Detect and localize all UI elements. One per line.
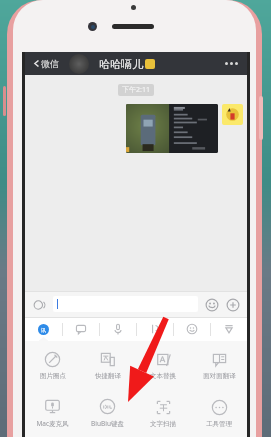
button[interactable]: Input method: [25, 317, 62, 341]
button[interactable]: Mac麦克风: [25, 389, 80, 437]
staticText: 文本替换: [150, 372, 176, 380]
staticText: 快捷翻译: [95, 372, 121, 380]
button[interactable]: Image message: [126, 104, 218, 153]
button[interactable]: 图片圈点: [25, 341, 80, 389]
staticText: 微信: [41, 58, 59, 69]
button[interactable]: 快捷翻译: [80, 341, 135, 389]
button[interactable]: Avatar: [222, 104, 243, 125]
button[interactable]: 文字扫描: [135, 389, 191, 437]
button[interactable]: Tool 3: [137, 317, 173, 341]
button[interactable]: Tool 1: [63, 317, 99, 341]
button[interactable]: Voice input: [31, 296, 48, 313]
button[interactable]: Tool 5: [211, 317, 247, 341]
button[interactable]: Tool 4: [174, 317, 210, 341]
button[interactable]: More options: [223, 56, 240, 71]
button[interactable]: 文本替换: [135, 341, 191, 389]
button[interactable]: Tool 2: [100, 317, 136, 341]
button[interactable]: 面对面翻译: [191, 341, 247, 389]
staticText: 讯: [41, 327, 46, 333]
staticText: Mac麦克风: [36, 419, 69, 428]
button[interactable]: Emoji: [203, 296, 220, 313]
button[interactable]: Avatar: [69, 54, 89, 74]
staticText: 下午2:11: [122, 85, 150, 95]
button[interactable]: 工具管理: [191, 389, 247, 437]
button[interactable]: BiuBiu键盘: [80, 389, 135, 437]
staticText: 哈哈嗝儿: [99, 57, 143, 71]
staticText: 工具管理: [206, 420, 232, 428]
button[interactable]: More: [224, 296, 241, 313]
staticText: 图片圈点: [40, 372, 66, 380]
button[interactable]: 微信: [32, 58, 60, 69]
staticText: 文字扫描: [150, 420, 176, 428]
staticText: BiuBiu键盘: [91, 419, 124, 428]
button[interactable]: [53, 296, 198, 312]
staticText: 面对面翻译: [203, 372, 236, 380]
